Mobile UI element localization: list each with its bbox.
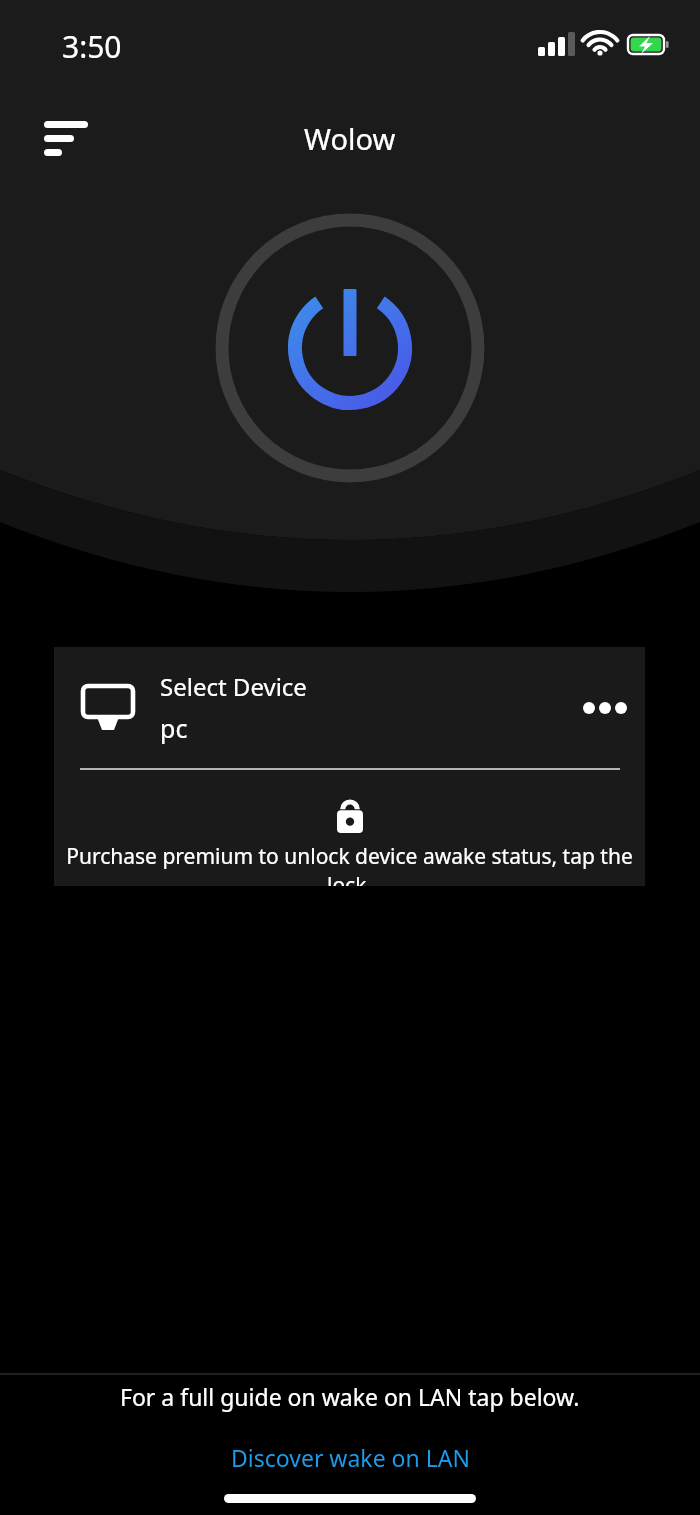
staticText: 3:50 xyxy=(62,26,122,67)
button[interactable]: Power xyxy=(215,213,485,483)
staticText: Select Device xyxy=(160,670,307,703)
other: Unlock xyxy=(337,800,363,833)
button[interactable]: Discover wake on LAN xyxy=(215,1438,486,1477)
staticText: For a full guide on wake on LAN tap belo… xyxy=(120,1381,580,1412)
button[interactable]: More options xyxy=(565,668,645,748)
button[interactable]: Select Device xyxy=(54,647,645,768)
staticText: Wolow xyxy=(304,119,396,158)
button[interactable]: Menu xyxy=(26,98,98,170)
staticText: pc xyxy=(160,711,188,745)
button[interactable]: Unlock xyxy=(54,770,645,886)
staticText: Purchase premium to unlock device awake … xyxy=(54,842,645,886)
staticText: Discover wake on LAN xyxy=(231,1442,470,1473)
